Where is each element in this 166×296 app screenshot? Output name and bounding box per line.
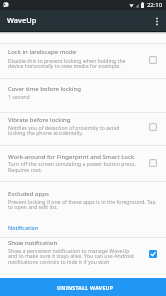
staticText: 1 second <box>8 93 30 100</box>
staticText: Requires root. <box>8 166 43 173</box>
staticText: Disable this to prevent locking when hol… <box>8 57 126 64</box>
staticText: Show a persistent notification to manage… <box>8 247 130 254</box>
staticText: notifications controls to hide it if you… <box>8 258 110 265</box>
button[interactable]: Unchecked <box>145 119 161 135</box>
staticText: UNINSTALL WAVEUP <box>57 284 114 291</box>
staticText: Turn off the screen simulating a power b… <box>8 160 136 167</box>
staticText: 22:10 <box>147 1 163 9</box>
staticText: to open and edit list. <box>8 203 58 210</box>
staticText: Work-around for Fingerprint and Smart Lo… <box>8 153 135 161</box>
button[interactable]: UNINSTALL WAVEUP <box>0 278 166 296</box>
staticText: Notifies you of detection of proximity t… <box>8 124 120 131</box>
button[interactable]: More options <box>148 12 166 30</box>
staticText: Cover time before locking <box>8 85 81 93</box>
button[interactable]: Checked <box>145 246 161 262</box>
staticText: Notification <box>8 224 39 231</box>
staticText: locking the phone accidentally. <box>8 129 84 136</box>
staticText: and to make sure it stays alive. You can… <box>8 252 134 259</box>
staticText: Vibrate before locking <box>8 116 71 124</box>
staticText: WaveUp <box>7 15 37 25</box>
staticText: Show notification <box>8 239 58 247</box>
staticText: Excluded apps <box>8 190 49 198</box>
button[interactable]: Unchecked <box>145 52 161 68</box>
button[interactable]: Unchecked <box>145 155 161 171</box>
staticText: Prevent locking if one of these apps is … <box>8 198 156 205</box>
staticText: Lock in landscape mode <box>8 48 77 56</box>
staticText: device horizontally to view media for ex… <box>8 62 121 69</box>
